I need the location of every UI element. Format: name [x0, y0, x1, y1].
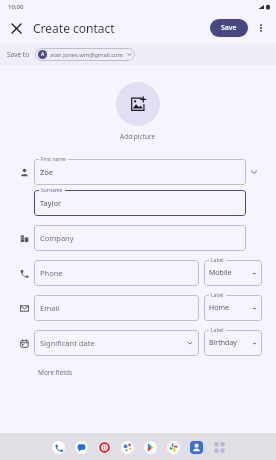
button[interactable]: Company [34, 225, 246, 251]
staticText: Birthday [209, 338, 237, 348]
button[interactable]: Mobile [204, 260, 262, 286]
button[interactable]: Save [210, 19, 248, 37]
button[interactable]: A [35, 48, 135, 61]
button[interactable]: Expand name fields [246, 164, 262, 180]
staticText: Create contact [33, 20, 115, 36]
button[interactable]: Play Store [141, 438, 159, 456]
button[interactable]: More options [252, 19, 270, 37]
staticText: Zoe [40, 167, 54, 177]
button[interactable]: Phone [34, 260, 199, 286]
button[interactable]: Messages [72, 438, 90, 456]
button[interactable]: Significant date [34, 330, 199, 356]
staticText: Save to [7, 50, 30, 59]
staticText: First name [41, 156, 66, 163]
staticText: Add picture [120, 132, 156, 141]
staticText: 10:00 [8, 3, 24, 11]
button[interactable]: Birthday [204, 330, 262, 356]
staticText: Home [209, 303, 229, 313]
staticText: A [41, 51, 45, 58]
button[interactable]: More fields [34, 366, 77, 379]
staticText: Taylor [40, 198, 62, 208]
staticText: Phone [40, 268, 63, 278]
button[interactable]: Opera [95, 438, 113, 456]
staticText: Save [221, 23, 237, 33]
staticText: Label [211, 257, 224, 264]
staticText: Email [40, 303, 60, 313]
staticText: Company [40, 233, 74, 243]
staticText: alan.jones.wm@gmail.com [50, 51, 124, 59]
button[interactable]: Photos [164, 438, 182, 456]
button[interactable]: Taylor [34, 190, 246, 216]
staticText: Label [211, 292, 224, 299]
staticText: Mobile [209, 268, 232, 278]
button[interactable]: Close [6, 18, 26, 38]
button[interactable]: Add picture [116, 82, 160, 126]
button[interactable]: Home [204, 295, 262, 321]
button[interactable]: All apps [210, 438, 228, 456]
staticText: Significant date [40, 338, 95, 348]
staticText: More fields [38, 368, 73, 377]
staticText: Surname [41, 187, 63, 194]
button[interactable]: Email [34, 295, 199, 321]
staticText: Label [211, 327, 224, 334]
button[interactable]: Zoe [34, 159, 246, 185]
button[interactable]: Phone [49, 438, 67, 456]
button[interactable]: Contacts [187, 438, 205, 456]
button[interactable]: Assistant [118, 438, 136, 456]
